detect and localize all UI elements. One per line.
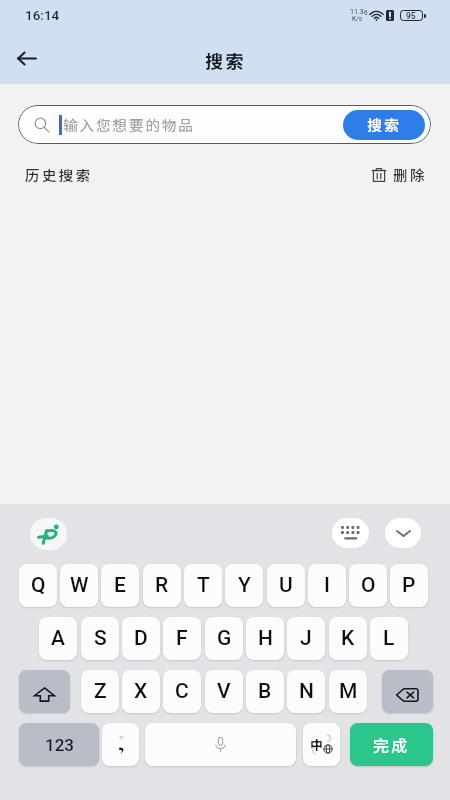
staticText: 6 <box>364 9 368 17</box>
button[interactable]: F <box>163 617 201 660</box>
button[interactable]: Keyboard layout <box>332 518 369 548</box>
button[interactable]: U <box>267 564 305 607</box>
button[interactable]: X <box>122 670 160 713</box>
button[interactable]: J <box>287 617 325 660</box>
staticText: V <box>217 679 231 704</box>
button[interactable]: 删除 <box>371 164 427 185</box>
staticText: A <box>51 626 65 651</box>
button[interactable]: A <box>39 617 77 660</box>
staticText: 删除 <box>393 164 427 185</box>
staticText: 11.3 <box>350 8 364 16</box>
button[interactable]: H <box>246 617 284 660</box>
button[interactable]: Shift <box>19 670 70 713</box>
staticText: E <box>114 573 126 598</box>
staticText: W <box>70 573 89 598</box>
button[interactable]: Back <box>5 36 49 80</box>
button[interactable]: Y <box>225 564 263 607</box>
staticText: Z <box>94 679 107 704</box>
staticText: 完成 <box>373 733 410 756</box>
staticText: P <box>402 573 416 598</box>
staticText: M <box>339 679 358 704</box>
staticText: 95 <box>406 11 416 21</box>
button[interactable]: Numbers <box>19 723 99 766</box>
button[interactable]: P <box>390 564 428 607</box>
button[interactable]: 搜索 <box>343 110 425 140</box>
button[interactable]: Input method <box>30 518 67 550</box>
button[interactable]: V <box>205 670 243 713</box>
staticText: Q <box>31 573 46 598</box>
button[interactable]: T <box>184 564 222 607</box>
staticText: H <box>258 626 273 651</box>
staticText: 中 <box>310 735 324 754</box>
staticText: Y <box>238 573 251 598</box>
button[interactable]: Backspace <box>382 670 433 713</box>
button[interactable]: G <box>205 617 243 660</box>
staticText: L <box>383 626 395 651</box>
button[interactable]: D <box>122 617 160 660</box>
staticText: U <box>279 573 293 598</box>
staticText: X <box>134 679 148 704</box>
button[interactable]: W <box>60 564 98 607</box>
button[interactable]: R <box>143 564 181 607</box>
button[interactable]: Q <box>19 564 57 607</box>
staticText: B <box>258 679 272 704</box>
button[interactable]: L <box>370 617 408 660</box>
button[interactable]: I <box>308 564 346 607</box>
button[interactable]: Language <box>303 723 340 766</box>
button[interactable]: O <box>349 564 387 607</box>
button[interactable]: Hide keyboard <box>385 518 421 548</box>
staticText: O <box>361 573 376 598</box>
button[interactable]: S <box>81 617 119 660</box>
staticText: I <box>324 573 330 598</box>
staticText: C <box>175 679 189 704</box>
staticText: T <box>197 573 210 598</box>
staticText: 16:14 <box>25 7 60 23</box>
staticText: J <box>300 626 312 651</box>
button[interactable]: Done <box>350 723 433 766</box>
staticText: D <box>134 626 148 651</box>
staticText: R <box>155 573 169 598</box>
staticText: 历史搜索 <box>25 164 93 185</box>
staticText: 搜索 <box>205 47 246 73</box>
button[interactable]: C <box>163 670 201 713</box>
button[interactable]: N <box>287 670 325 713</box>
staticText: 输入您想要的物品 <box>63 114 195 135</box>
staticText: K <box>341 626 355 651</box>
button[interactable]: M <box>329 670 367 713</box>
button[interactable]: Comma <box>102 723 139 766</box>
staticText: 123 <box>45 735 74 755</box>
staticText: F <box>176 626 188 651</box>
staticText: 搜索 <box>367 114 402 136</box>
staticText: G <box>217 626 232 651</box>
button[interactable]: Space <box>145 723 296 766</box>
staticText: S <box>94 626 107 651</box>
staticText: N <box>299 679 314 704</box>
button[interactable]: K <box>329 617 367 660</box>
button[interactable]: E <box>101 564 139 607</box>
button[interactable]: B <box>246 670 284 713</box>
button[interactable]: Z <box>81 670 119 713</box>
staticText: K/s <box>352 15 363 23</box>
